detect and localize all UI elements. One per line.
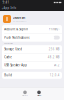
button[interactable]: Library xyxy=(18,91,32,96)
staticText: Version 4.2.1 (2201) xyxy=(13,20,26,22)
staticText: 256 MB xyxy=(49,47,60,51)
staticText: App Info xyxy=(3,6,16,10)
staticText: DevStream xyxy=(13,16,25,20)
staticText: 9:41 xyxy=(3,1,10,4)
staticText: Settings xyxy=(36,95,41,96)
staticText: 48.2 MB xyxy=(48,55,60,59)
staticText: Cache xyxy=(4,55,12,59)
staticText: › xyxy=(59,27,60,31)
staticText: v4.2 xyxy=(54,63,60,67)
staticText: USB Speaker App xyxy=(4,63,27,67)
staticText: Build xyxy=(4,73,12,77)
button[interactable]: Settings xyxy=(32,91,46,96)
button[interactable]: Build xyxy=(2,72,62,79)
staticText: Library xyxy=(22,95,28,96)
staticText: Account & Signin xyxy=(4,27,28,31)
staticText: Push Notifications xyxy=(4,36,29,39)
button[interactable]: ‹ xyxy=(0,5,18,11)
staticText: APPLICATION xyxy=(4,43,13,44)
staticText: Primary xyxy=(49,27,58,31)
staticText: 12.0.4 xyxy=(50,73,60,77)
button[interactable]: Account & Signin xyxy=(2,25,62,33)
staticText: Storage Used xyxy=(4,47,22,51)
button[interactable]: Push Notifications xyxy=(2,33,62,42)
staticText: ‹ xyxy=(2,5,3,11)
